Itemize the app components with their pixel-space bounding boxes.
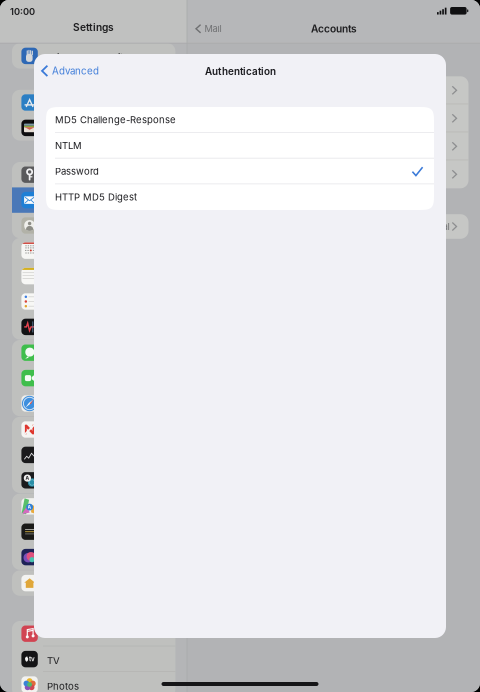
button[interactable] <box>214 104 468 132</box>
button[interactable] <box>12 90 175 115</box>
staticText: Photos <box>47 680 79 692</box>
button[interactable] <box>12 162 175 187</box>
button[interactable] <box>12 391 175 416</box>
button[interactable] <box>12 519 175 544</box>
staticText: Advanced <box>52 65 99 77</box>
button[interactable] <box>12 115 175 141</box>
staticText: A <box>25 475 29 481</box>
button[interactable] <box>12 570 175 596</box>
button[interactable] <box>12 187 175 213</box>
button[interactable] <box>12 314 175 340</box>
button[interactable]: A <box>12 494 175 519</box>
button[interactable]: NTLM <box>46 133 434 159</box>
button[interactable]: MD5 Challenge-Response <box>46 107 434 133</box>
button[interactable]: A <box>12 468 175 493</box>
button[interactable] <box>12 621 175 646</box>
button[interactable] <box>214 160 468 188</box>
staticText: tv <box>29 655 35 663</box>
staticText: A <box>28 504 32 510</box>
staticText: Authentication <box>205 65 276 77</box>
button[interactable] <box>12 213 175 238</box>
button[interactable] <box>214 76 468 104</box>
button[interactable] <box>12 289 175 314</box>
button[interactable] <box>12 43 175 69</box>
staticText: 10:00 <box>10 6 35 17</box>
button[interactable] <box>12 417 175 442</box>
button[interactable] <box>12 340 175 365</box>
staticText: Accounts <box>311 23 357 35</box>
staticText: Push, Fetch, Manual <box>356 221 449 232</box>
button[interactable] <box>12 365 175 391</box>
staticText: TV <box>47 655 60 667</box>
button[interactable] <box>12 263 175 289</box>
button[interactable]: Password <box>46 158 434 184</box>
button[interactable] <box>214 132 468 160</box>
button[interactable]: tv <box>12 646 175 672</box>
staticText: Mail <box>205 23 222 34</box>
button[interactable] <box>12 442 175 468</box>
staticText: Password <box>55 166 99 177</box>
button[interactable] <box>12 544 175 570</box>
button[interactable] <box>12 238 175 263</box>
button[interactable]: HTTP MD5 Digest <box>46 184 434 210</box>
button[interactable]: Advanced <box>36 59 105 83</box>
staticText: Privacy & Security <box>47 52 128 63</box>
button[interactable]: Mail <box>191 18 227 39</box>
staticText: MD5 Challenge-Response <box>55 114 176 126</box>
button[interactable] <box>214 212 468 240</box>
staticText: HTTP MD5 Digest <box>55 191 137 203</box>
staticText: NTLM <box>55 140 82 151</box>
button[interactable] <box>12 672 175 692</box>
staticText: Settings <box>73 21 114 34</box>
